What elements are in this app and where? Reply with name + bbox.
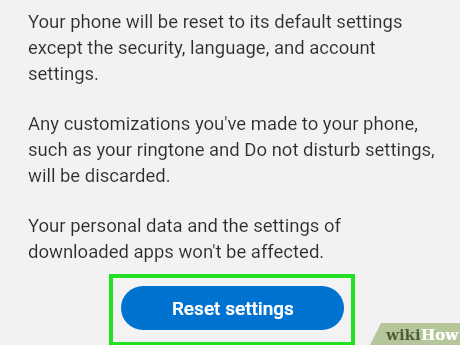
staticText: Reset settings <box>172 297 294 319</box>
staticText: wiki <box>386 326 421 344</box>
staticText: Your personal data and the settings of d… <box>28 215 360 263</box>
staticText: Your phone will be reset to its default … <box>28 11 430 85</box>
staticText: Any customizations you've made to your p… <box>28 113 442 187</box>
staticText: How <box>421 326 459 344</box>
button[interactable]: Reset settings <box>121 286 344 330</box>
